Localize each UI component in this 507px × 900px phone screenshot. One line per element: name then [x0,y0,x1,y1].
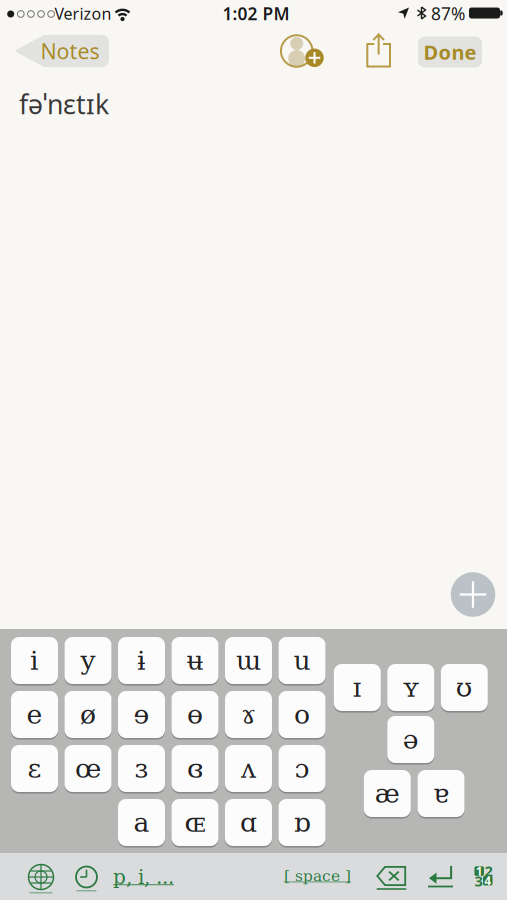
button[interactable]: p, i, ... [103,862,183,892]
staticText: ʊ [456,672,473,703]
staticText: ɯ [236,645,261,676]
button[interactable]: Notes [14,34,109,67]
button[interactable]: ʊ [441,663,488,712]
button[interactable] [427,861,453,889]
staticText: o [294,699,310,730]
staticText: ɘ [133,699,149,730]
button[interactable]: [ space ] [277,863,357,889]
button[interactable]: ɜ [118,744,165,793]
button[interactable]: a [118,798,165,847]
staticText: [ space ] [284,867,351,885]
button[interactable] [366,33,391,67]
button[interactable]: Done [418,36,482,67]
staticText: ɒ [293,807,310,838]
staticText: ɨ [137,645,146,676]
staticText: i [30,645,39,676]
button[interactable]: ɘ [118,690,165,739]
button[interactable] [376,861,406,891]
button[interactable]: y [64,636,111,685]
button[interactable]: ə [387,715,434,764]
button[interactable]: ɒ [278,798,325,847]
staticText: Notes [40,37,99,65]
staticText: ɶ [184,807,205,838]
staticText: ɤ [241,699,256,730]
button[interactable]: ɶ [171,798,218,847]
staticText: 87% [431,2,465,25]
button[interactable]: ʌ [225,744,272,793]
button[interactable]: ɤ [225,690,272,739]
staticText: ɜ [134,753,148,784]
button[interactable]: ɯ [225,636,272,685]
button[interactable]: o [278,690,325,739]
button[interactable]: œ [64,744,111,793]
staticText: ə [403,724,419,755]
staticText: ɪ [353,672,362,703]
button[interactable]: ɵ [171,690,218,739]
button[interactable]: ø [64,690,111,739]
button[interactable]: e [11,690,58,739]
button[interactable]: ɞ [171,744,218,793]
staticText: fəˈnɛtɪk [19,86,109,122]
staticText: p, i, ... [113,865,174,889]
staticText: ʏ [402,672,419,703]
button[interactable]: æ [364,769,411,818]
staticText: ɞ [187,753,203,784]
button[interactable] [451,572,495,617]
button[interactable]: ɪ [334,663,381,712]
button[interactable]: u [278,636,325,685]
staticText: Verizon [54,3,111,24]
button[interactable]: 1 [473,865,494,886]
staticText: ɑ [240,807,257,838]
button[interactable]: i [11,636,58,685]
button[interactable] [75,861,98,893]
staticText: ɛ [27,753,41,784]
staticText: ø [80,699,96,730]
staticText: ʉ [186,645,203,676]
staticText: 2 [485,861,493,880]
button[interactable]: ɑ [225,798,272,847]
button[interactable]: ʏ [387,663,434,712]
staticText: Done [423,39,476,65]
staticText: æ [375,778,400,809]
staticText: u [293,645,310,676]
staticText: ʌ [241,753,256,784]
staticText: a [133,807,149,838]
staticText: y [80,645,95,676]
staticText: ɔ [294,753,309,784]
button[interactable]: ɨ [118,636,165,685]
staticText: e [26,699,42,730]
button[interactable]: ɐ [417,769,464,818]
button[interactable] [272,26,322,76]
staticText: ɐ [433,778,449,809]
button[interactable]: ɔ [278,744,325,793]
staticText: 1 [476,863,483,879]
staticText: 3 [474,871,482,891]
button[interactable] [27,860,54,894]
button[interactable]: ɛ [11,744,58,793]
staticText: œ [75,753,101,784]
button[interactable]: ʉ [171,636,218,685]
staticText: 4 [484,873,491,889]
staticText: ɵ [187,699,203,730]
staticText: 1:02 PM [222,2,289,25]
